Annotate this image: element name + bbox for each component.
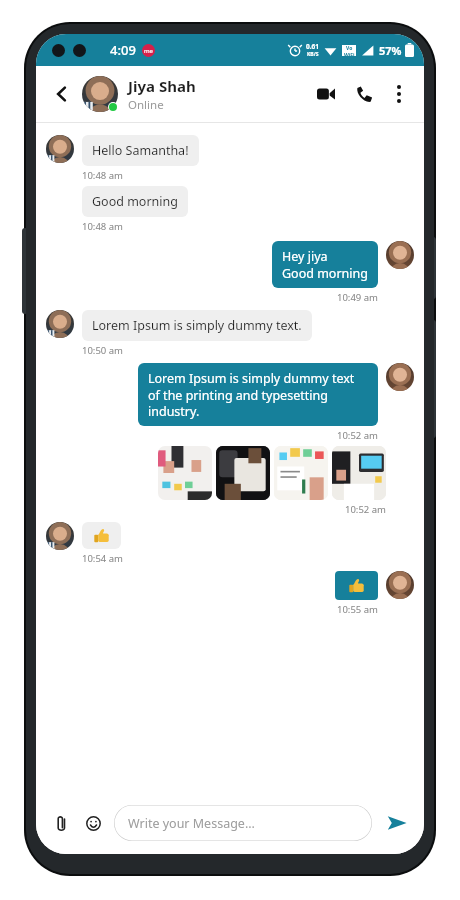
button[interactable]: Back	[46, 78, 78, 110]
button[interactable]	[82, 522, 121, 549]
staticText: 57%	[379, 43, 402, 58]
staticText: me	[144, 47, 153, 55]
staticText: 10:52 am	[337, 429, 378, 442]
staticText: Write your Message...	[128, 815, 255, 832]
button[interactable]: Photo 2	[216, 446, 270, 500]
button[interactable]: Call	[348, 78, 380, 110]
staticText: 0.61	[306, 42, 319, 51]
button[interactable]: Lorem Ipsum is simply dummy text.	[82, 310, 312, 341]
button[interactable]: Hey jiya Good morning	[272, 241, 378, 288]
button[interactable]: More options	[384, 79, 414, 109]
staticText: 10:49 am	[337, 291, 378, 304]
staticText: Lorem Ipsum is simply dummy text of the …	[148, 370, 368, 419]
button[interactable]: Good morning	[82, 186, 188, 217]
button[interactable]: Jiya Shah	[128, 76, 310, 113]
staticText: Hello Samantha!	[92, 142, 189, 159]
button[interactable]	[335, 571, 378, 600]
staticText: 4:09	[110, 41, 136, 59]
button[interactable]: Video call	[310, 78, 342, 110]
staticText: 10:48 am	[82, 220, 123, 233]
button[interactable]: Emoji	[80, 810, 106, 836]
staticText: Jiya Shah	[128, 76, 196, 96]
button[interactable]: Hello Samantha!	[82, 135, 199, 166]
staticText: Lorem Ipsum is simply dummy text.	[92, 317, 302, 334]
button[interactable]: Attach file	[48, 810, 74, 836]
button[interactable]: Photo 3	[274, 446, 328, 500]
button[interactable]: Send	[382, 808, 412, 838]
staticText: 10:54 am	[82, 552, 123, 565]
staticText: 10:55 am	[337, 603, 378, 616]
button[interactable]: Lorem Ipsum is simply dummy text of the …	[138, 363, 378, 426]
button[interactable]: Photo 1	[158, 446, 212, 500]
button[interactable]: Write your Message...	[114, 805, 372, 841]
staticText: Good morning	[92, 193, 178, 210]
staticText: Vo	[346, 45, 353, 52]
staticText: 10:52 am	[345, 503, 386, 516]
staticText: KB/S	[307, 51, 319, 58]
staticText: Online	[128, 97, 164, 113]
staticText: WiFi	[344, 52, 355, 56]
staticText: 10:50 am	[82, 344, 123, 357]
button[interactable]: Photo 4	[332, 446, 386, 500]
staticText: Hey jiya Good morning	[282, 248, 368, 281]
staticText: 10:48 am	[82, 169, 123, 182]
